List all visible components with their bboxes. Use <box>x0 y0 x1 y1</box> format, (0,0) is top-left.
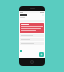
button[interactable] <box>20 34 44 37</box>
button[interactable] <box>20 42 44 45</box>
button[interactable]: Add <box>39 52 44 57</box>
button[interactable]: Filter <box>20 50 22 52</box>
button[interactable] <box>20 23 44 33</box>
button[interactable] <box>20 38 44 41</box>
